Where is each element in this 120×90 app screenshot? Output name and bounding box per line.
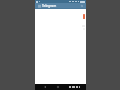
button[interactable]: Back [41, 84, 49, 90]
button[interactable]: Search [80, 4, 84, 8]
button[interactable]: Recent apps [68, 84, 81, 90]
button[interactable]: Home [54, 84, 62, 90]
staticText: Telegram [42, 4, 57, 8]
button[interactable]: Scroll indicator [83, 14, 85, 19]
button[interactable]: Open navigation menu [37, 4, 41, 8]
